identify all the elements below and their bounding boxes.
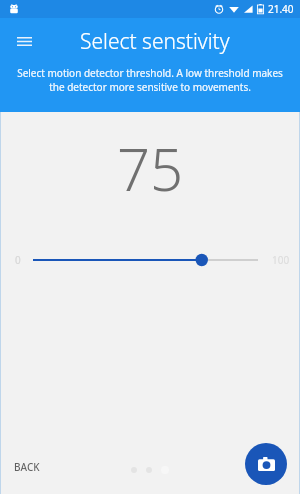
staticText: Select senstivity — [80, 27, 230, 56]
staticText: 100 — [272, 253, 290, 267]
staticText: 75 — [117, 129, 184, 208]
staticText: 0 — [15, 253, 21, 267]
staticText: BACK — [14, 460, 40, 474]
button[interactable]: Sensitivity slider, 75 — [0, 246, 300, 274]
staticText: 21.40 — [268, 2, 294, 16]
button[interactable]: BACK — [8, 452, 46, 482]
staticText: Select motion detector threshold. A low … — [16, 66, 284, 94]
button[interactable]: Take photo — [245, 443, 287, 485]
button[interactable]: Open navigation menu — [10, 27, 38, 55]
